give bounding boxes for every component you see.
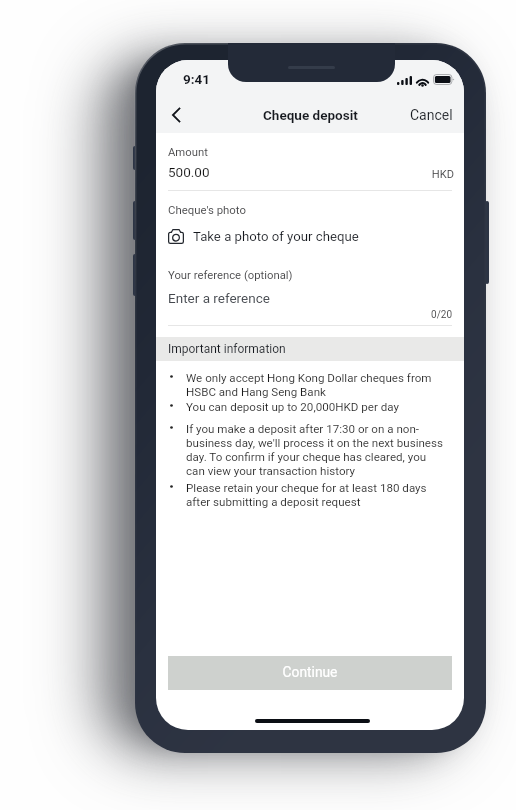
staticText: Important information [168,342,286,356]
staticText: Cheque deposit [263,107,358,123]
staticText: Your reference (optional) [168,269,293,282]
button[interactable]: Continue [168,656,452,690]
button[interactable]: Take a photo of your cheque [168,229,452,244]
staticText: We only accept Hong Kong Dollar cheques … [186,371,432,399]
staticText: Continue [168,664,452,680]
staticText: Enter a reference [168,290,270,306]
staticText: If you make a deposit after 17:30 or on … [186,422,443,478]
staticText: Cancel [410,107,453,123]
button[interactable]: Back [158,97,194,133]
staticText: HKD [168,168,454,181]
staticText: Amount [168,146,208,159]
staticText: 0/20 [168,309,452,321]
staticText: Please retain your cheque for at least 1… [186,481,427,509]
staticText: Cheque's photo [168,203,246,216]
staticText: 9:41 [183,71,211,87]
button[interactable]: Cancel [399,98,464,132]
staticText: 500.00 [168,164,210,180]
staticText: Take a photo of your cheque [193,229,359,244]
staticText: You can deposit up to 20,000HKD per day [186,400,399,414]
